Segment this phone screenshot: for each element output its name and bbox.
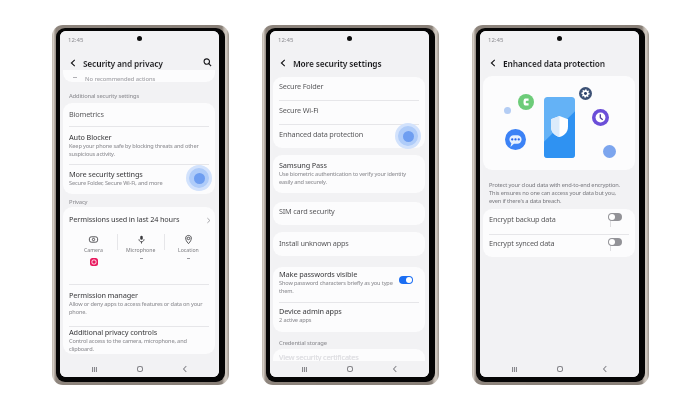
button[interactable]: Location <box>165 229 211 274</box>
staticText: Keep your phone safe by blocking threats… <box>69 142 199 158</box>
staticText: SIM card security <box>279 206 335 216</box>
button[interactable] <box>273 155 425 193</box>
button[interactable]: Home <box>550 359 570 377</box>
staticText: Secure Folder <box>279 81 324 91</box>
staticText: Encrypt backup data <box>489 214 556 224</box>
button[interactable]: Recent apps <box>84 359 104 377</box>
staticText: Security and privacy <box>83 58 163 69</box>
staticText: Show password characters briefly as you … <box>279 279 393 295</box>
staticText: View security certificates <box>279 352 359 362</box>
staticText: Secure Folder, Secure Wi-Fi, and more <box>69 179 163 187</box>
staticText: Enhanced data protection <box>279 129 364 139</box>
button[interactable] <box>399 276 413 284</box>
button[interactable] <box>63 164 215 194</box>
button[interactable] <box>63 326 215 355</box>
staticText: Secure Wi-Fi <box>279 105 319 115</box>
staticText: Biometrics <box>69 109 104 119</box>
staticText: More security settings <box>69 169 143 179</box>
button[interactable]: Microphone <box>118 229 164 274</box>
button[interactable] <box>608 213 622 221</box>
button[interactable] <box>608 238 622 246</box>
button[interactable]: Recent apps <box>294 359 314 377</box>
staticText: Enhanced data protection <box>503 58 606 69</box>
button[interactable] <box>63 207 215 229</box>
button[interactable] <box>273 124 425 148</box>
staticText: Install unknown apps <box>279 238 349 248</box>
button[interactable] <box>63 284 215 325</box>
button[interactable] <box>273 202 425 225</box>
staticText: Encrypt synced data <box>489 238 555 248</box>
staticText: Permissions used in last 24 hours <box>69 214 180 224</box>
staticText: Auto Blocker <box>69 132 112 142</box>
staticText: Additional privacy controls <box>69 327 158 337</box>
button[interactable]: Back <box>65 55 80 70</box>
button[interactable] <box>273 302 425 331</box>
staticText: Permission manager <box>69 290 138 300</box>
button[interactable]: Back <box>275 55 290 70</box>
button[interactable]: Camera <box>70 229 117 274</box>
button[interactable] <box>63 126 215 165</box>
button[interactable] <box>273 267 425 303</box>
staticText: Make passwords visible <box>279 269 358 279</box>
staticText: Allow or deny apps to access features or… <box>69 300 203 316</box>
button[interactable] <box>273 100 425 124</box>
button[interactable] <box>63 103 215 126</box>
button[interactable]: Back <box>595 359 615 377</box>
staticText: Camera <box>84 246 103 253</box>
staticText: Samsung Pass <box>279 160 327 170</box>
staticText: Device admin apps <box>279 306 342 316</box>
staticText: Privacy <box>69 198 88 206</box>
staticText: Use biometric authentication to verify y… <box>279 170 407 186</box>
button[interactable]: Back <box>385 359 405 377</box>
staticText: Credential storage <box>279 339 327 347</box>
staticText: 12:45 <box>488 36 504 44</box>
button[interactable] <box>273 232 425 256</box>
staticText: Microphone <box>126 246 156 253</box>
button[interactable]: Home <box>340 359 360 377</box>
button[interactable] <box>483 234 635 257</box>
button[interactable] <box>273 77 425 100</box>
staticText: 12:45 <box>278 36 294 44</box>
button[interactable] <box>483 209 635 233</box>
staticText: Location <box>178 246 199 253</box>
button[interactable]: Back <box>175 359 195 377</box>
staticText: 2 active apps <box>279 316 312 324</box>
staticText: Additional security settings <box>69 92 140 100</box>
button[interactable]: Search <box>200 55 215 70</box>
button[interactable]: Back <box>485 55 500 70</box>
staticText: No recommended actions <box>85 75 156 83</box>
staticText: 12:45 <box>68 36 84 44</box>
button[interactable]: Home <box>130 359 150 377</box>
staticText: Control access to the camera, microphone… <box>69 337 187 353</box>
staticText: Protect your cloud data with end-to-end … <box>489 181 620 205</box>
button[interactable]: Recent apps <box>504 359 524 377</box>
staticText: More security settings <box>293 58 382 69</box>
